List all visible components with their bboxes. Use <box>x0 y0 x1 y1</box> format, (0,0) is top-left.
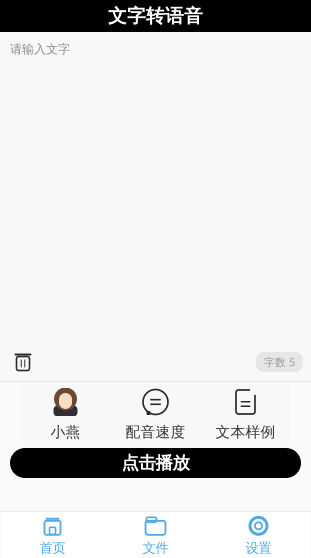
staticText: 点击播放 <box>121 452 189 474</box>
button[interactable]: 配音速度 <box>110 386 200 442</box>
button[interactable]: 小燕 <box>20 386 110 442</box>
staticText: 配音速度 <box>125 423 185 441</box>
button[interactable]: 清空文字 <box>8 349 38 375</box>
staticText: 文字转语音 <box>108 4 203 27</box>
button[interactable]: 首页 <box>1 512 104 558</box>
button[interactable]: 点击播放 <box>10 448 301 478</box>
button[interactable]: 设置 <box>207 512 310 558</box>
staticText: 文本样例 <box>215 423 275 441</box>
staticText: 文件 <box>142 540 168 556</box>
staticText: 设置 <box>245 540 271 556</box>
staticText: 请输入文字 <box>10 42 70 57</box>
staticText: 小燕 <box>50 423 80 441</box>
staticText: 首页 <box>39 540 65 556</box>
staticText: 字数 5 <box>264 355 295 369</box>
button[interactable]: 文本样例 <box>200 386 290 442</box>
button[interactable]: 文件 <box>104 512 207 558</box>
